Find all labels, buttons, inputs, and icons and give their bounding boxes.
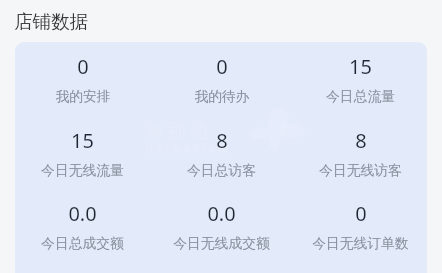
staticText: 今日无线流量 <box>41 162 124 179</box>
staticText: 0.0 <box>68 200 97 227</box>
button[interactable]: 8 <box>152 127 291 193</box>
staticText: 我的待办 <box>194 88 250 105</box>
staticText: HAINABIAN <box>145 141 230 156</box>
button[interactable]: 0.0 <box>152 200 291 266</box>
staticText: 15 <box>71 127 94 154</box>
staticText: 今日总访客 <box>187 162 256 179</box>
staticText: 8 <box>355 127 367 154</box>
button[interactable]: 15 <box>13 127 152 193</box>
staticText: 15 <box>349 53 372 80</box>
staticText: 0 <box>355 200 367 227</box>
button[interactable]: 15 <box>291 53 430 119</box>
staticText: 0.0 <box>207 200 236 227</box>
staticText: 8 <box>216 127 228 154</box>
staticText: 今日总成交额 <box>41 235 124 252</box>
staticText: 今日无线订单数 <box>312 235 409 252</box>
staticText: 0 <box>216 53 228 80</box>
staticText: 今日总流量 <box>326 88 395 105</box>
staticText: 我的安排 <box>55 88 111 105</box>
button[interactable]: 0 <box>152 53 291 119</box>
staticText: 今日无线成交额 <box>173 235 270 252</box>
button[interactable]: 0 <box>13 53 152 119</box>
button[interactable]: 0.0 <box>13 200 152 266</box>
button[interactable]: 店铺数据 <box>14 10 89 33</box>
staticText: 今日无线访客 <box>319 162 402 179</box>
button[interactable]: 8 <box>291 127 430 193</box>
staticText: 0 <box>77 53 89 80</box>
button[interactable]: 0 <box>291 200 430 266</box>
